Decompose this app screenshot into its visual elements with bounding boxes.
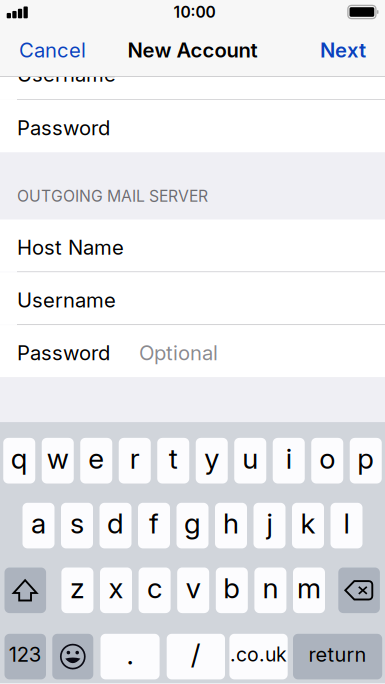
button[interactable]: Next <box>312 28 374 72</box>
button[interactable]: o <box>311 438 343 483</box>
staticText: Cancel <box>19 38 86 62</box>
staticText: l <box>343 506 349 540</box>
button[interactable]: Password <box>0 100 385 152</box>
button[interactable]: h <box>215 503 247 548</box>
staticText: Password <box>17 116 110 140</box>
staticText: f <box>149 506 159 540</box>
staticText: Username <box>17 288 116 312</box>
staticText: v <box>186 571 201 605</box>
staticText: .co.uk <box>230 643 287 666</box>
staticText: a <box>31 506 46 540</box>
staticText: t <box>169 442 178 475</box>
button[interactable]: .co.uk <box>229 634 288 679</box>
button[interactable]: t <box>157 438 189 483</box>
button[interactable]: k <box>292 503 324 548</box>
staticText: New Account <box>127 38 257 62</box>
staticText: c <box>147 571 162 605</box>
button[interactable]: d <box>99 503 131 548</box>
button[interactable]: w <box>42 438 74 483</box>
staticText: z <box>70 571 85 605</box>
button[interactable]: Username <box>0 272 385 324</box>
staticText: j <box>266 506 272 540</box>
button[interactable]: e <box>80 438 112 483</box>
staticText: n <box>262 571 278 605</box>
staticText: d <box>107 506 124 540</box>
staticText: h <box>223 506 239 540</box>
button[interactable]: Host Name <box>0 219 385 271</box>
staticText: o <box>319 442 335 475</box>
staticText: s <box>70 506 84 540</box>
button[interactable]: Emoji <box>52 634 93 679</box>
staticText: y <box>204 442 219 475</box>
button[interactable]: Shift <box>4 567 46 613</box>
staticText: return <box>309 642 367 667</box>
staticText: OUTGOING MAIL SERVER <box>17 186 208 206</box>
button[interactable]: 123 <box>4 634 46 679</box>
button[interactable]: z <box>61 567 93 613</box>
button[interactable]: g <box>176 503 208 548</box>
button[interactable]: . <box>100 634 160 679</box>
button[interactable]: m <box>293 567 325 613</box>
button[interactable]: c <box>139 567 171 613</box>
staticText: m <box>297 571 321 605</box>
button[interactable]: q <box>3 438 35 483</box>
button[interactable]: a <box>22 503 54 548</box>
staticText: Password <box>17 341 110 365</box>
button[interactable]: r <box>119 438 151 483</box>
staticText: i <box>286 442 292 475</box>
staticText: q <box>11 442 28 475</box>
staticText: Host Name <box>17 235 124 259</box>
staticText: b <box>223 571 240 605</box>
button[interactable]: j <box>253 503 285 548</box>
button[interactable]: n <box>254 567 286 613</box>
staticText: p <box>357 442 374 475</box>
staticText: e <box>88 442 104 475</box>
staticText: x <box>108 571 123 605</box>
staticText: . <box>126 637 133 671</box>
button[interactable]: b <box>216 567 248 613</box>
staticText: k <box>300 506 315 540</box>
button[interactable]: Username <box>0 46 385 99</box>
staticText: w <box>47 442 69 475</box>
button[interactable]: v <box>177 567 209 613</box>
button[interactable]: / <box>167 634 225 679</box>
staticText: 123 <box>9 642 42 667</box>
staticText: r <box>130 442 140 475</box>
button[interactable]: Password <box>0 325 385 377</box>
staticText: u <box>242 442 258 475</box>
button[interactable]: x <box>100 567 132 613</box>
button[interactable]: p <box>350 438 382 483</box>
button[interactable]: f <box>138 503 170 548</box>
staticText: 10:00 <box>173 3 215 21</box>
button[interactable]: return <box>293 634 382 679</box>
button[interactable]: u <box>234 438 266 483</box>
button[interactable]: Delete <box>338 567 380 613</box>
button[interactable]: y <box>196 438 228 483</box>
staticText: g <box>184 506 201 540</box>
button[interactable]: s <box>61 503 93 548</box>
button[interactable]: i <box>273 438 305 483</box>
staticText: Optional <box>139 341 218 365</box>
staticText: / <box>191 637 201 671</box>
button[interactable]: l <box>330 503 362 548</box>
staticText: Next <box>320 38 366 62</box>
staticText: Username <box>17 62 116 86</box>
button[interactable]: Cancel <box>11 28 94 72</box>
